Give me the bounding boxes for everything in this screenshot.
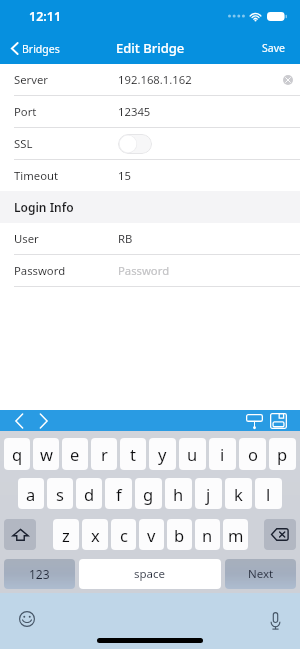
staticText: i	[220, 443, 225, 465]
button[interactable]: m	[223, 519, 248, 550]
button[interactable]: Next field	[35, 411, 52, 431]
staticText: z	[62, 524, 70, 546]
staticText: 123	[29, 566, 50, 582]
staticText: Bridges	[22, 42, 60, 56]
button[interactable]: q	[4, 438, 30, 470]
button[interactable]: i	[209, 438, 236, 470]
staticText: y	[158, 443, 167, 465]
button[interactable]: v	[139, 519, 164, 550]
button[interactable]: Emoji	[19, 611, 35, 627]
staticText: l	[266, 483, 271, 505]
button[interactable]: Next	[225, 559, 296, 589]
staticText: n	[202, 524, 213, 546]
staticText: x	[91, 524, 100, 546]
button[interactable]: Save	[252, 37, 300, 59]
button[interactable]: Password	[0, 255, 300, 286]
button[interactable]: w	[33, 438, 59, 470]
staticText: RB	[118, 231, 133, 246]
button[interactable]: g	[135, 478, 162, 509]
staticText: k	[234, 483, 243, 505]
button[interactable]: f	[105, 478, 132, 509]
button[interactable]: SSL	[0, 128, 300, 159]
staticText: h	[173, 483, 184, 505]
staticText: 15	[118, 168, 131, 183]
staticText: Edit Bridge	[116, 39, 185, 57]
staticText: Next	[248, 566, 274, 582]
staticText: b	[174, 524, 185, 546]
button[interactable]: y	[149, 438, 176, 470]
staticText: d	[84, 483, 95, 505]
staticText: j	[206, 483, 211, 505]
button[interactable]: d	[76, 478, 102, 509]
button[interactable]: b	[167, 519, 192, 550]
staticText: Save	[262, 41, 285, 55]
staticText: s	[56, 483, 64, 505]
staticText: SSL	[14, 136, 33, 151]
button[interactable]: Timeout	[0, 160, 300, 191]
staticText: a	[26, 483, 36, 505]
button[interactable]: a	[18, 478, 44, 509]
staticText: Server	[14, 72, 49, 87]
staticText: o	[248, 443, 258, 465]
staticText: Timeout	[14, 168, 59, 183]
button[interactable]: l	[255, 478, 282, 509]
button[interactable]: SSL toggle	[118, 134, 152, 154]
staticText: r	[101, 443, 108, 465]
button[interactable]: User	[0, 223, 300, 254]
staticText: 192.168.1.162	[118, 72, 192, 87]
button[interactable]: Save	[268, 412, 289, 430]
staticText: Password	[118, 263, 170, 278]
staticText: Port	[14, 104, 37, 119]
staticText: p	[277, 443, 288, 465]
button[interactable]: o	[239, 438, 266, 470]
button[interactable]: e	[62, 438, 88, 470]
button[interactable]: Shift	[4, 519, 36, 550]
staticText: v	[147, 524, 156, 546]
staticText: 12345	[118, 104, 151, 119]
staticText: f	[116, 483, 122, 505]
button[interactable]: h	[165, 478, 192, 509]
staticText: 12:11	[29, 8, 62, 25]
button[interactable]: r	[91, 438, 117, 470]
button[interactable]: space	[79, 559, 221, 589]
staticText: u	[187, 443, 198, 465]
button[interactable]: 123	[4, 559, 75, 589]
button[interactable]: Server	[0, 64, 300, 95]
button[interactable]: Previous field	[11, 411, 28, 431]
button[interactable]: z	[53, 519, 79, 550]
button[interactable]: c	[111, 519, 136, 550]
button[interactable]: Port	[0, 96, 300, 127]
button[interactable]: Bridges	[0, 37, 68, 60]
staticText: Login Info	[14, 199, 74, 215]
button[interactable]: n	[195, 519, 220, 550]
staticText: Password	[14, 263, 66, 278]
button[interactable]: x	[82, 519, 108, 550]
staticText: t	[130, 443, 136, 465]
button[interactable]: k	[225, 478, 252, 509]
button[interactable]: Hide keyboard	[244, 413, 265, 430]
button[interactable]: t	[120, 438, 146, 470]
button[interactable]: Voice input	[270, 612, 281, 630]
button[interactable]: u	[179, 438, 206, 470]
staticText: e	[70, 443, 80, 465]
button[interactable]: Backspace	[264, 519, 296, 550]
staticText: space	[134, 566, 166, 582]
staticText: q	[12, 443, 23, 465]
staticText: w	[40, 443, 53, 465]
staticText: User	[14, 231, 39, 246]
button[interactable]: j	[195, 478, 222, 509]
staticText: m	[228, 524, 244, 546]
staticText: c	[120, 524, 128, 546]
button[interactable]: s	[47, 478, 73, 509]
button[interactable]: p	[269, 438, 296, 470]
staticText: g	[143, 483, 154, 505]
